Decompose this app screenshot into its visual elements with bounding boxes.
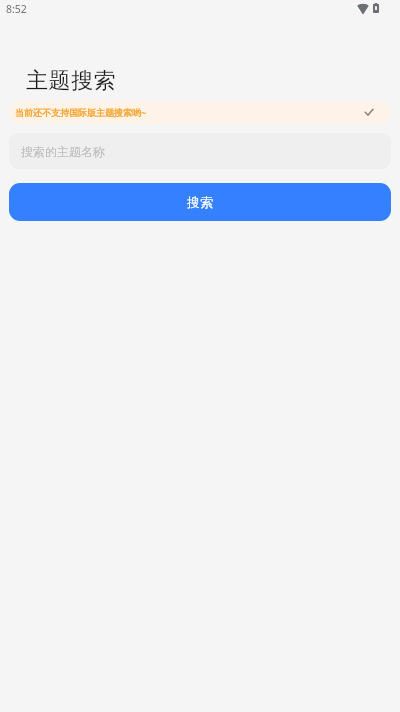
staticText: 搜索的主题名称 xyxy=(21,144,105,159)
button[interactable]: 搜索 xyxy=(9,183,391,221)
other: Battery xyxy=(373,3,379,13)
staticText: 8:52 xyxy=(6,2,27,16)
button[interactable]: 搜索的主题名称 xyxy=(9,133,391,169)
button[interactable]: 当前还不支持国际版主题搜索哟~ xyxy=(9,101,391,124)
other: Wi-Fi xyxy=(357,3,369,14)
button[interactable]: Dismiss notice xyxy=(357,101,380,124)
staticText: 搜索 xyxy=(187,194,213,210)
staticText: 主题搜索 xyxy=(26,67,117,95)
staticText: 当前还不支持国际版主题搜索哟~ xyxy=(15,106,147,118)
